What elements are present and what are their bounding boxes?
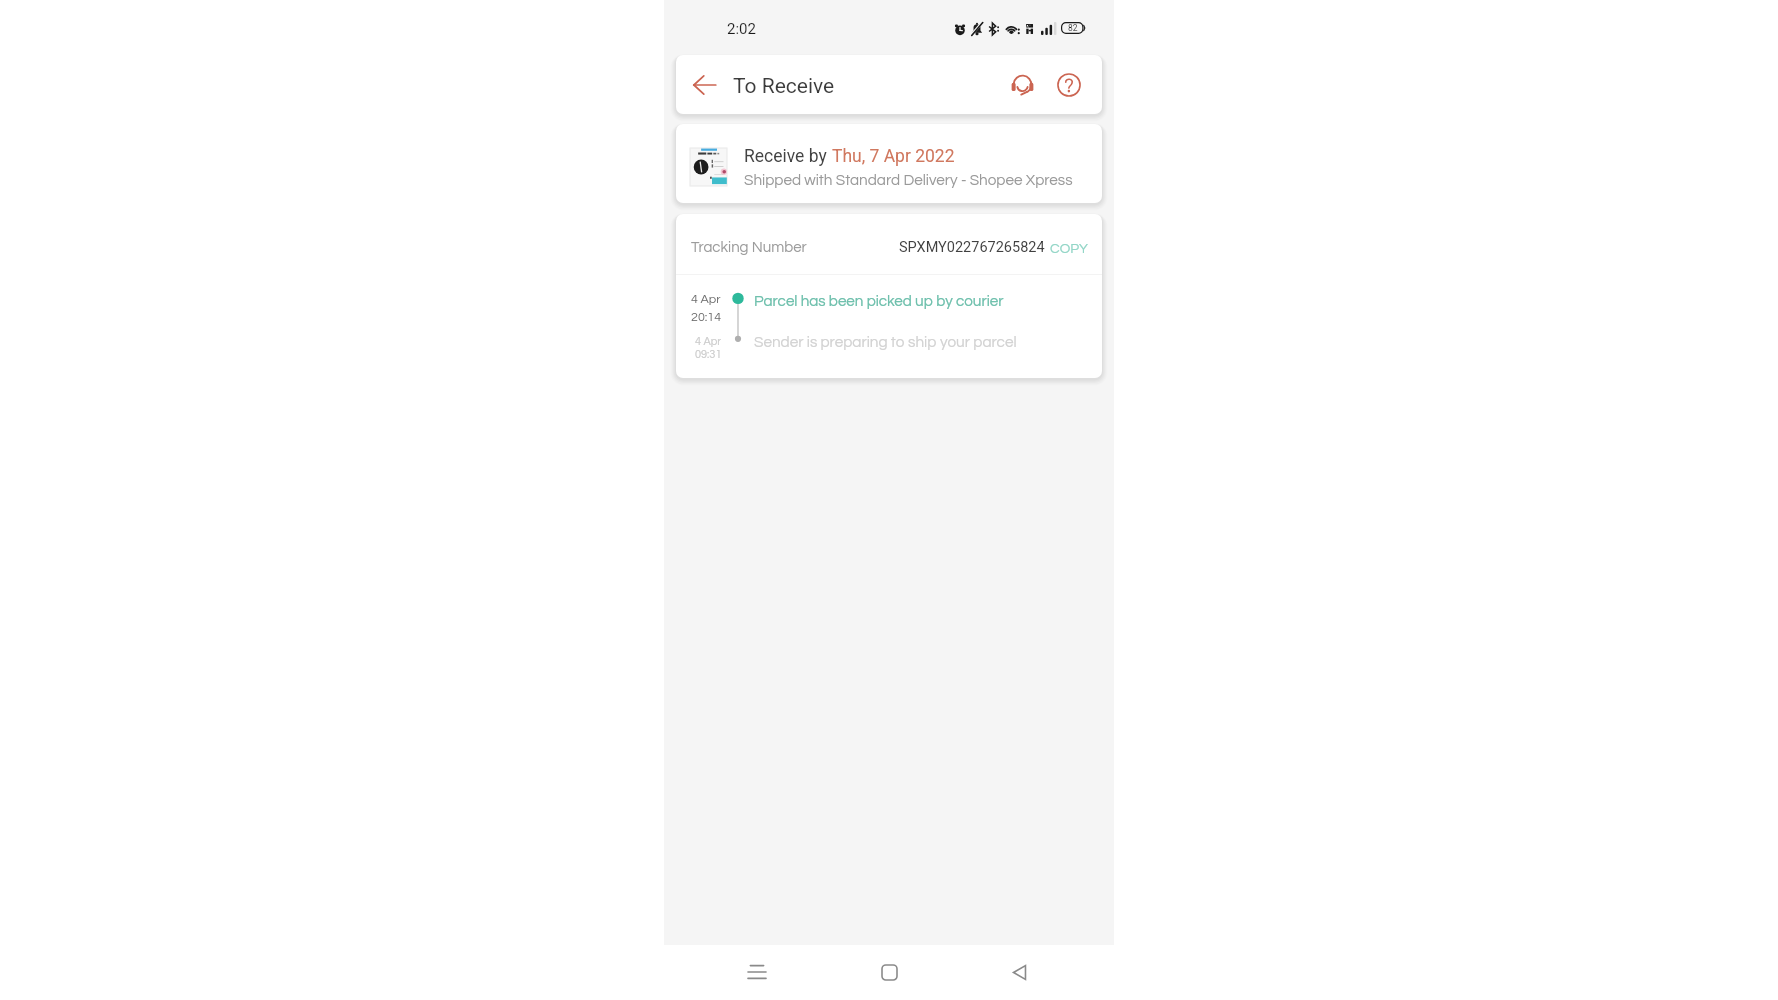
staticText: Receive by bbox=[744, 146, 832, 167]
staticText: 4 Apr bbox=[695, 336, 722, 347]
staticText: Tracking Number bbox=[691, 240, 807, 255]
staticText: SPXMY022767265824 bbox=[899, 239, 1045, 256]
staticText: Sender is preparing to ship your parcel bbox=[754, 334, 1017, 350]
button[interactable]: COPY bbox=[1050, 242, 1088, 256]
staticText: 82 bbox=[1068, 23, 1078, 33]
button[interactable]: Receive by bbox=[676, 124, 1102, 203]
button[interactable]: Recent apps bbox=[737, 954, 777, 990]
staticText: To Receive bbox=[733, 74, 835, 99]
staticText: 09:31 bbox=[695, 349, 722, 360]
button[interactable]: Home bbox=[869, 954, 909, 990]
button[interactable]: Back bbox=[688, 69, 720, 101]
staticText: Thu, 7 Apr 2022 bbox=[832, 146, 955, 167]
staticText: 2:02 bbox=[727, 20, 756, 38]
staticText: 4 Apr bbox=[691, 293, 721, 306]
staticText: 20:14 bbox=[691, 311, 722, 324]
button[interactable]: Help bbox=[1052, 68, 1086, 102]
button[interactable]: Customer support chat bbox=[1005, 68, 1039, 102]
button[interactable]: Back bbox=[999, 954, 1039, 990]
staticText: Parcel has been picked up by courier bbox=[754, 294, 1004, 310]
staticText: COPY bbox=[1050, 242, 1088, 256]
staticText: Shipped with Standard Delivery - Shopee … bbox=[744, 172, 1073, 188]
button[interactable]: Tracking Number bbox=[676, 214, 1102, 274]
